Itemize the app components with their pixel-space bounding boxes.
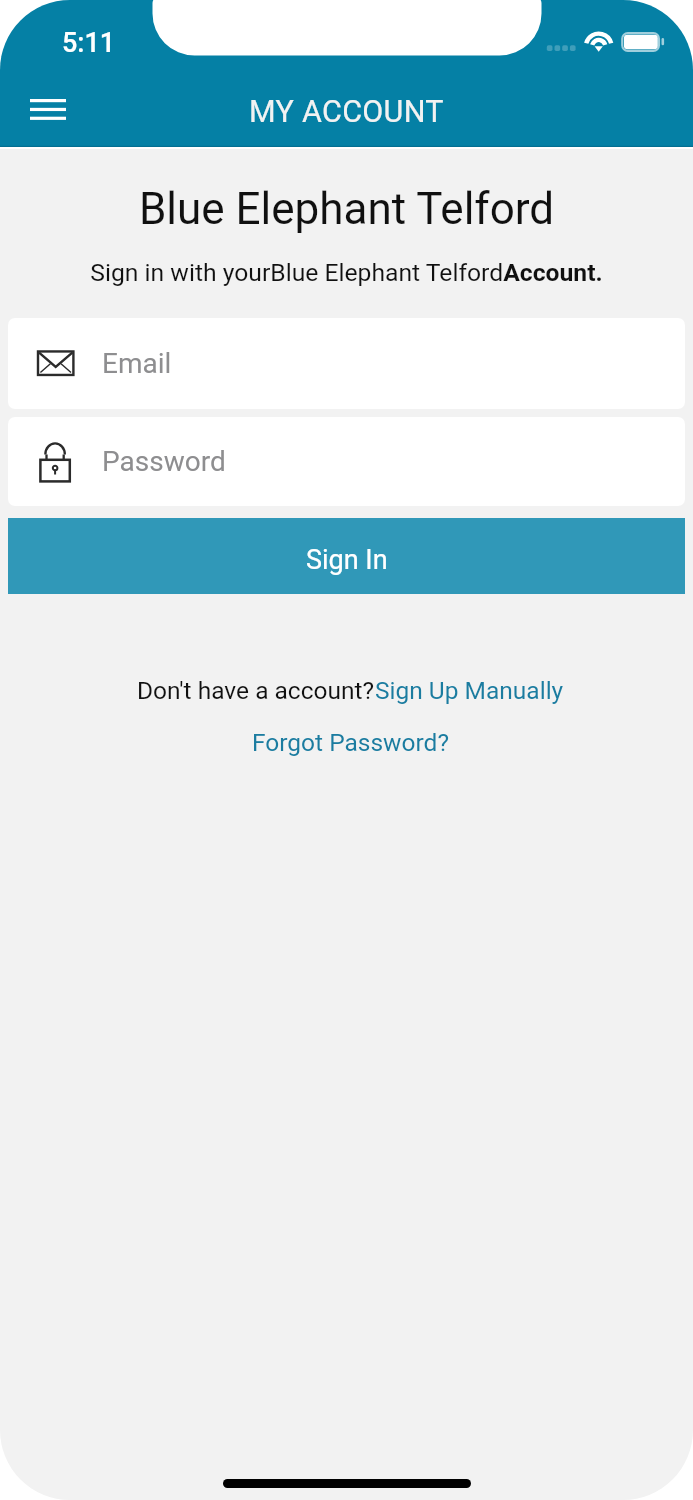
button[interactable]: Open navigation menu	[8, 78, 86, 142]
staticText: Don't have a account?	[137, 676, 375, 705]
button[interactable]: Sign In	[8, 518, 685, 594]
staticText: Sign In	[306, 544, 388, 576]
staticText: Forgot Password?	[252, 728, 449, 757]
button[interactable]: Sign Up Manually	[375, 676, 564, 705]
button[interactable]: Email	[8, 318, 685, 409]
staticText: Sign in with yourBlue Elephant TelfordAc…	[0, 258, 693, 287]
button[interactable]: Forgot Password?	[252, 728, 449, 757]
staticText: Email	[102, 347, 172, 380]
button[interactable]: Password	[8, 417, 685, 506]
staticText: Blue Elephant Telford	[0, 183, 693, 235]
staticText: MY ACCOUNT	[249, 94, 444, 130]
staticText: 5:11	[62, 27, 116, 59]
staticText: Password	[102, 445, 226, 478]
staticText: Sign Up Manually	[375, 676, 564, 705]
